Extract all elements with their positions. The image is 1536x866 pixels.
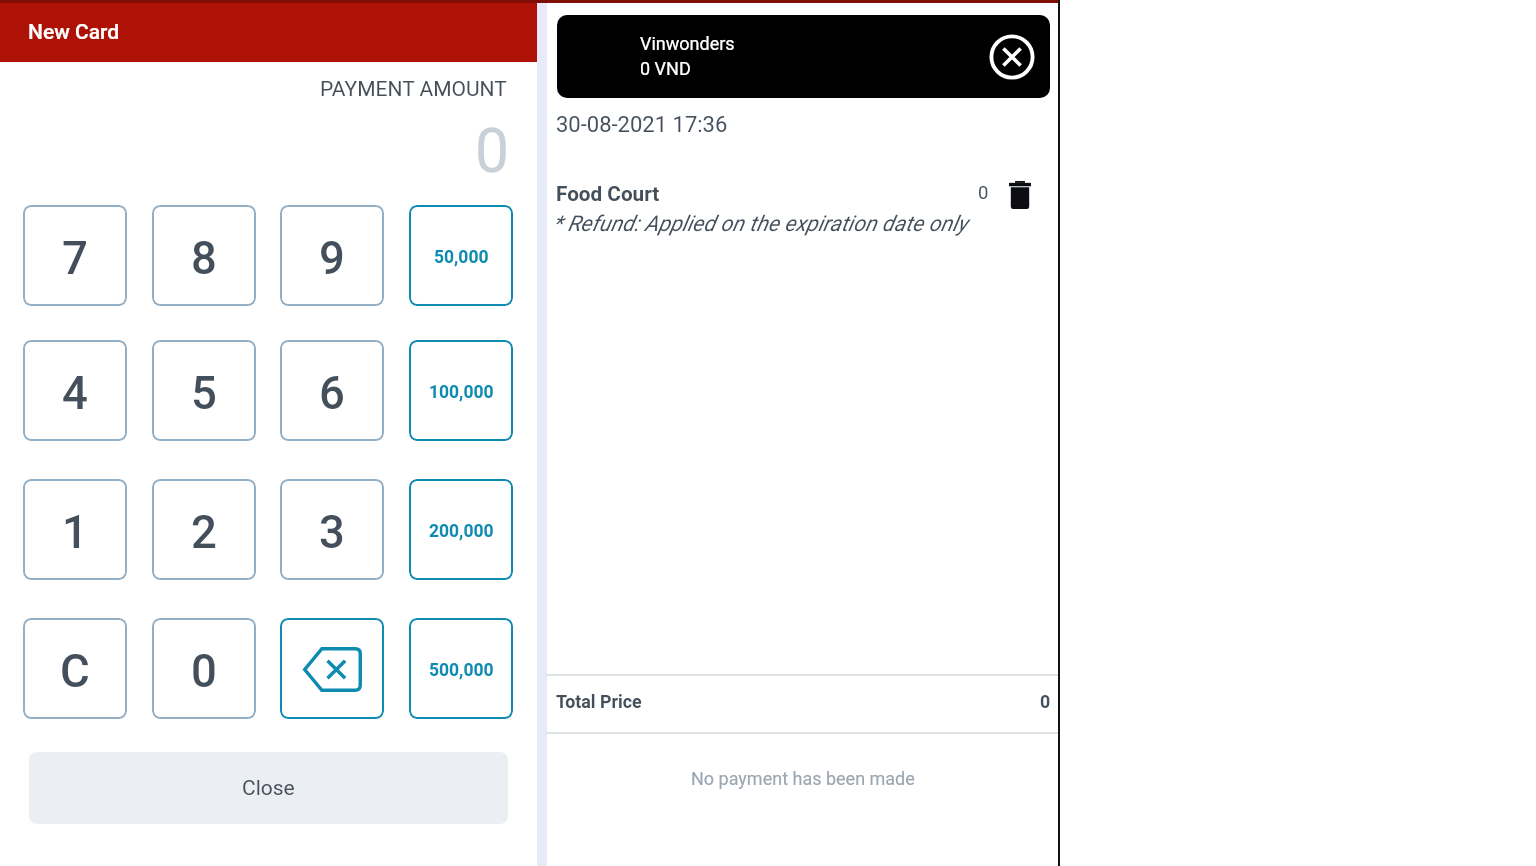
button[interactable]: Delete: [1009, 181, 1031, 209]
staticText: 50,000: [434, 247, 489, 268]
button[interactable]: 6: [280, 340, 384, 441]
button[interactable]: Vinwonders: [557, 15, 1050, 98]
staticText: C: [60, 645, 90, 698]
staticText: Total Price: [556, 691, 642, 712]
button[interactable]: 2: [152, 479, 256, 580]
staticText: 200,000: [429, 521, 494, 542]
staticText: Food Court: [556, 182, 660, 206]
button[interactable]: 7: [23, 205, 127, 306]
staticText: 30-08-2021 17:36: [556, 112, 728, 138]
staticText: 0 VND: [640, 58, 691, 79]
button[interactable]: 4: [23, 340, 127, 441]
button[interactable]: Close: [29, 752, 508, 824]
staticText: No payment has been made: [691, 768, 915, 789]
staticText: Close: [242, 776, 295, 801]
staticText: 500,000: [429, 660, 494, 681]
button[interactable]: 100,000: [409, 340, 513, 441]
staticText: 100,000: [429, 382, 494, 403]
staticText: 0: [191, 645, 217, 698]
button[interactable]: Backspace: [280, 618, 384, 719]
staticText: PAYMENT AMOUNT: [320, 77, 507, 102]
button[interactable]: 3: [280, 479, 384, 580]
staticText: 2: [191, 506, 217, 559]
staticText: 3: [319, 506, 345, 559]
staticText: 9: [319, 232, 345, 285]
button[interactable]: Total Price: [547, 676, 1058, 732]
button[interactable]: 0: [152, 618, 256, 719]
button[interactable]: 1: [23, 479, 127, 580]
button[interactable]: 8: [152, 205, 256, 306]
staticText: Vinwonders: [640, 33, 735, 54]
staticText: 7: [62, 232, 88, 285]
staticText: 4: [62, 367, 88, 420]
staticText: New Card: [28, 20, 120, 45]
button[interactable]: Close card: [988, 33, 1036, 81]
button[interactable]: 500,000: [409, 618, 513, 719]
staticText: 5: [191, 367, 217, 420]
button[interactable]: C: [23, 618, 127, 719]
staticText: 0: [978, 182, 989, 204]
staticText: * Refund: Applied on the expiration date…: [553, 211, 968, 236]
staticText: 0: [475, 116, 510, 187]
button[interactable]: 50,000: [409, 205, 513, 306]
staticText: 6: [319, 367, 345, 420]
staticText: 8: [191, 232, 217, 285]
button[interactable]: New Card: [28, 20, 120, 45]
button[interactable]: 5: [152, 340, 256, 441]
staticText: 1: [62, 506, 88, 559]
staticText: 0: [1040, 691, 1051, 712]
button[interactable]: 9: [280, 205, 384, 306]
button[interactable]: 200,000: [409, 479, 513, 580]
